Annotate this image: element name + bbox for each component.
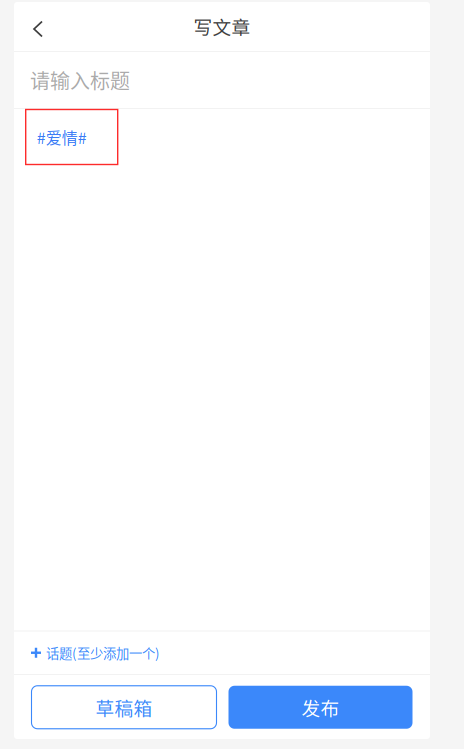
staticText: 草稿箱: [95, 694, 152, 721]
button[interactable]: 草稿箱: [31, 686, 216, 729]
button[interactable]: Back: [14, 2, 60, 50]
staticText: 请输入标题: [30, 65, 130, 94]
staticText: #爱情#: [37, 125, 87, 149]
button[interactable]: 请输入标题: [14, 52, 430, 108]
button[interactable]: 正文: [14, 109, 430, 630]
staticText: 话题(至少添加一个): [46, 643, 160, 662]
staticText: 发布: [301, 694, 339, 721]
staticText: 写文章: [193, 13, 250, 40]
button[interactable]: 发布: [228, 686, 412, 729]
button[interactable]: 话题(至少添加一个): [14, 631, 430, 674]
